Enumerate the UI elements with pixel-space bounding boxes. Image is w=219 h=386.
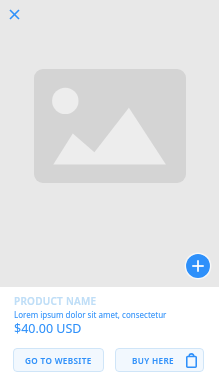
button[interactable]: Product image [34, 69, 186, 183]
button[interactable]: Close [5, 5, 24, 24]
staticText: BUY HERE [132, 355, 174, 366]
staticText: GO TO WEBSITE [25, 355, 92, 366]
staticText: $40.00 USD [14, 320, 82, 337]
button[interactable]: GO TO WEBSITE [13, 348, 104, 372]
button[interactable]: BUY HERE [115, 348, 204, 372]
staticText: Lorem ipsum dolor sit amet, consectetur [14, 309, 167, 320]
staticText: PRODUCT NAME [14, 294, 97, 308]
button[interactable]: Add [184, 252, 212, 280]
